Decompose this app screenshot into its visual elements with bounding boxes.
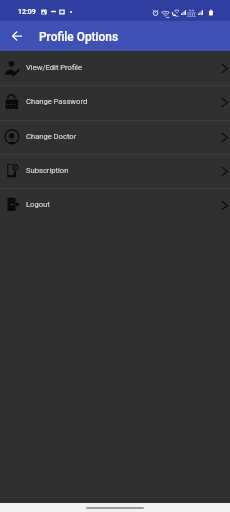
button[interactable]: Change Doctor	[0, 120, 230, 154]
button[interactable]: Logout	[0, 188, 230, 222]
button[interactable]: Back	[6, 25, 27, 46]
button[interactable]: Change Password	[0, 85, 230, 119]
staticText: View/Edit Profile	[26, 63, 82, 72]
staticText: Profile Options	[39, 30, 119, 44]
staticText: Logout	[26, 200, 50, 209]
button[interactable]: Subscription	[0, 154, 230, 188]
button[interactable]: View/Edit Profile	[0, 51, 230, 85]
staticText: Change Password	[26, 97, 88, 106]
staticText: Change Doctor	[26, 132, 77, 141]
staticText: Subscription	[26, 166, 69, 175]
staticText: 12:09	[18, 8, 36, 16]
